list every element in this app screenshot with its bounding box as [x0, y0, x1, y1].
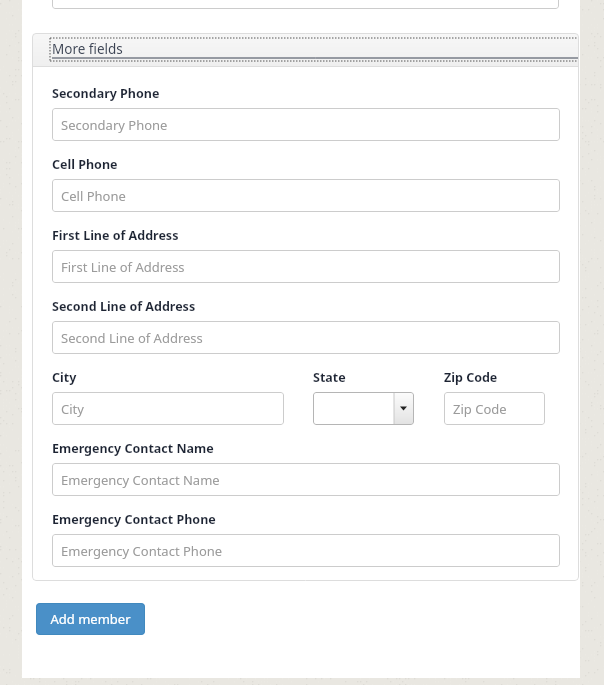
- staticText: Cell Phone: [52, 156, 118, 173]
- staticText: City: [61, 400, 84, 418]
- staticText: Emergency Contact Phone: [52, 511, 216, 528]
- staticText: More fields: [52, 40, 123, 58]
- button[interactable]: Second Line of Address: [52, 321, 560, 354]
- button[interactable]: Emergency Contact Name: [52, 463, 560, 496]
- staticText: First Line of Address: [61, 258, 185, 276]
- staticText: Add member: [50, 610, 131, 628]
- button[interactable]: Cell Phone: [52, 179, 560, 212]
- button[interactable]: First Line of Address: [52, 250, 560, 283]
- staticText: Cell Phone: [61, 187, 126, 205]
- staticText: Emergency Contact Phone: [61, 542, 223, 560]
- staticText: Second Line of Address: [61, 329, 203, 347]
- staticText: Emergency Contact Name: [52, 440, 214, 457]
- staticText: City: [52, 369, 77, 386]
- staticText: Secondary Phone: [52, 85, 160, 102]
- button[interactable]: Select state: [313, 392, 414, 425]
- button[interactable]: [52, 0, 559, 9]
- staticText: Zip Code: [444, 369, 498, 386]
- staticText: Secondary Phone: [61, 116, 168, 134]
- button[interactable]: Zip Code: [444, 392, 545, 425]
- staticText: Zip Code: [453, 400, 507, 418]
- button[interactable]: Add member: [36, 603, 145, 635]
- button[interactable]: Secondary Phone: [52, 108, 560, 141]
- staticText: State: [313, 369, 346, 386]
- staticText: Second Line of Address: [52, 298, 196, 315]
- button[interactable]: City: [52, 392, 284, 425]
- button[interactable]: Emergency Contact Phone: [52, 534, 560, 567]
- staticText: First Line of Address: [52, 227, 179, 244]
- staticText: Emergency Contact Name: [61, 471, 220, 489]
- button[interactable]: More fields: [52, 40, 579, 59]
